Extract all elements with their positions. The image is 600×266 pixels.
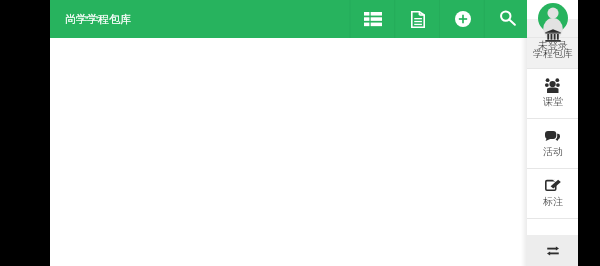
button[interactable] bbox=[527, 0, 578, 58]
button[interactable]: Search bbox=[485, 0, 530, 38]
button[interactable]: List bbox=[350, 0, 395, 38]
staticText: 学程包库 bbox=[533, 47, 573, 60]
staticText: 未登录 bbox=[538, 39, 568, 52]
staticText: 标注 bbox=[543, 195, 563, 208]
button[interactable]: 课堂 bbox=[527, 69, 578, 118]
button[interactable]: Add bbox=[440, 0, 485, 38]
staticText: 活动 bbox=[543, 145, 563, 158]
button[interactable] bbox=[527, 19, 578, 68]
staticText: 尚学学程包库 bbox=[65, 12, 131, 26]
button[interactable]: 活动 bbox=[527, 119, 578, 168]
button[interactable]: Switch account bbox=[527, 235, 578, 266]
staticText: 课堂 bbox=[543, 95, 563, 108]
button[interactable]: 标注 bbox=[527, 169, 578, 218]
button[interactable]: Documents bbox=[395, 0, 440, 38]
